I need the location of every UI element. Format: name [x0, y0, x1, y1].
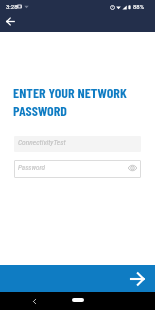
button[interactable]: Back	[2, 13, 18, 29]
staticText: Password	[18, 163, 46, 171]
staticText: ENTER YOUR NETWORK PASSWORD	[13, 84, 127, 119]
button[interactable]: Password	[14, 160, 141, 178]
staticText: 3:28	[6, 3, 18, 10]
button[interactable]: Next	[0, 265, 155, 292]
button[interactable]: ConnectivityTest	[14, 136, 141, 152]
button[interactable]: Show password	[126, 162, 138, 174]
button[interactable]: Back	[28, 295, 40, 307]
staticText: ConnectivityTest	[18, 138, 66, 147]
staticText: 88%	[133, 3, 145, 10]
button[interactable]: Home	[72, 298, 84, 302]
